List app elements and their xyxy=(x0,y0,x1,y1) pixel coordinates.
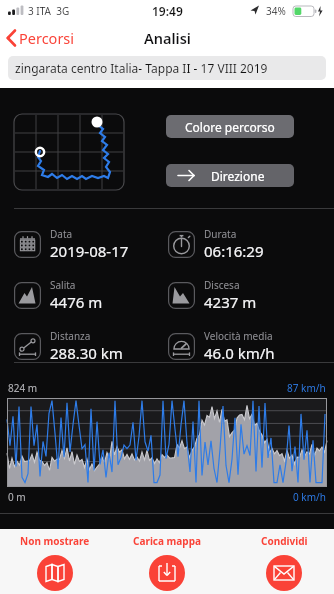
staticText: 34% xyxy=(266,4,286,18)
button[interactable]: Condividi xyxy=(239,529,329,591)
staticText: Salita xyxy=(50,278,76,292)
staticText: Data xyxy=(50,227,73,241)
staticText: 0 m xyxy=(8,490,26,504)
staticText: Direzione xyxy=(211,168,265,184)
staticText: 4237 m xyxy=(204,292,257,312)
staticText: zingarata centro Italia- Tappa II - 17 V… xyxy=(15,60,268,76)
staticText: 87 km/h xyxy=(287,381,326,395)
button[interactable]: Carica mappa xyxy=(122,529,212,591)
staticText: 06:16:29 xyxy=(204,241,264,261)
staticText: Non mostrare xyxy=(20,534,90,548)
staticText: 3 ITA 3G xyxy=(28,4,70,18)
staticText: 4476 m xyxy=(50,292,103,312)
button[interactable]: Non mostrare xyxy=(10,529,100,591)
staticText: 0 km/h xyxy=(293,490,326,504)
staticText: Carica mappa xyxy=(133,534,201,548)
staticText: 19:49 xyxy=(152,3,183,19)
staticText: 2019-08-17 xyxy=(50,241,129,261)
staticText: Distanza xyxy=(50,329,91,343)
staticText: 46.0 km/h xyxy=(204,343,275,363)
button[interactable]: Percorsi xyxy=(6,22,75,54)
staticText: Discesa xyxy=(204,278,240,292)
staticText: Velocità media xyxy=(204,329,273,343)
staticText: Durata xyxy=(204,227,237,241)
button[interactable]: zingarata centro Italia- Tappa II - 17 V… xyxy=(8,56,326,80)
staticText: Percorsi xyxy=(19,28,75,48)
staticText: Analisi xyxy=(144,28,191,48)
staticText: Colore percorso xyxy=(185,119,275,135)
staticText: Condividi xyxy=(261,534,308,548)
button[interactable]: Colore percorso xyxy=(166,115,294,138)
staticText: 288.30 km xyxy=(50,343,123,363)
button[interactable]: Direzione xyxy=(166,164,294,187)
staticText: 824 m xyxy=(8,381,38,395)
